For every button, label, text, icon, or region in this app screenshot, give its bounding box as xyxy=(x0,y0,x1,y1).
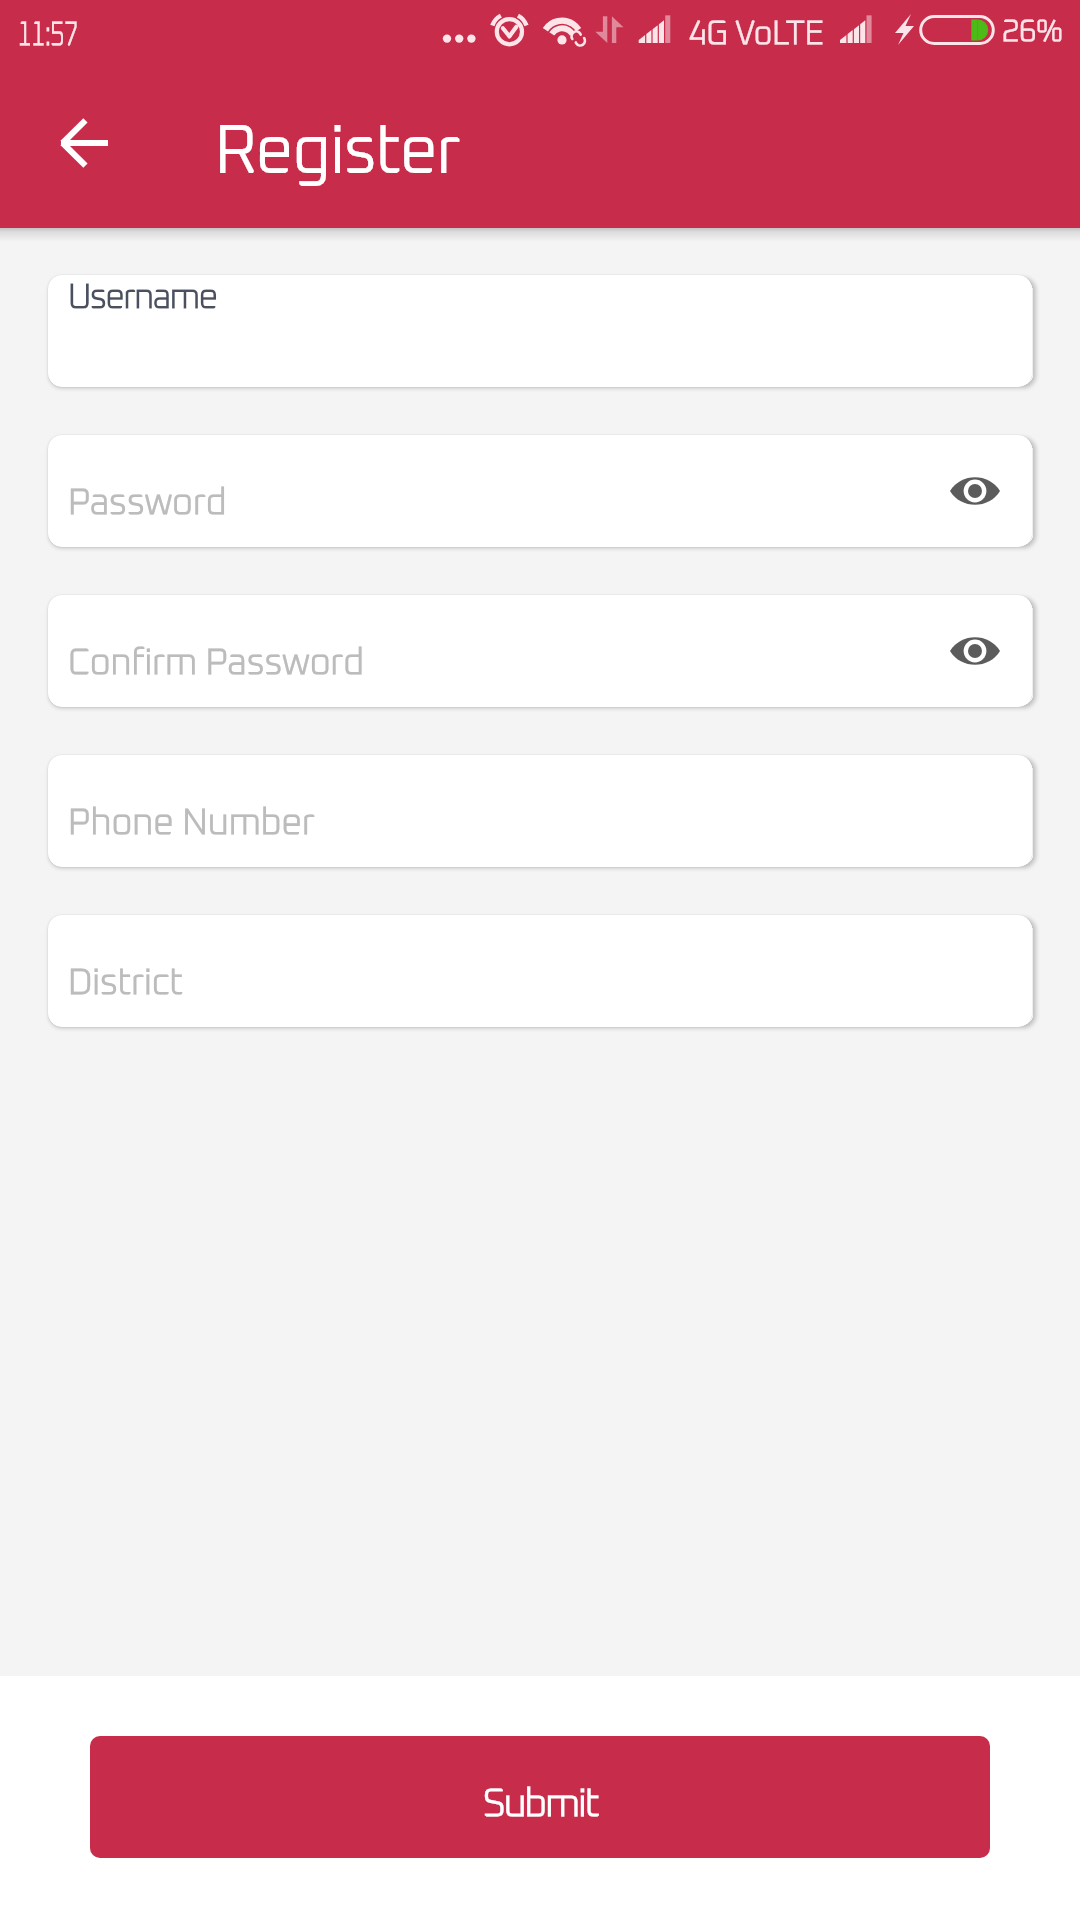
staticText: District xyxy=(68,966,184,1002)
staticText: Username xyxy=(68,281,217,315)
button[interactable]: Show password xyxy=(939,455,1011,527)
button[interactable]: Confirm Password xyxy=(48,595,1032,707)
staticText: Confirm Password xyxy=(68,646,365,682)
staticText: Password xyxy=(68,486,227,522)
button[interactable]: Password xyxy=(48,435,1032,547)
staticText: Submit xyxy=(483,1785,598,1824)
button[interactable]: District xyxy=(48,915,1032,1027)
button[interactable]: Back xyxy=(48,107,120,179)
button[interactable]: Show password xyxy=(939,615,1011,687)
staticText: Register xyxy=(215,121,460,186)
staticText: 26% xyxy=(1002,17,1063,47)
button[interactable]: Phone Number xyxy=(48,755,1032,867)
staticText: 11:57 xyxy=(18,20,78,52)
staticText: 4G VoLTE xyxy=(688,19,824,51)
button[interactable]: Submit xyxy=(90,1736,990,1858)
staticText: Phone Number xyxy=(68,806,315,842)
button[interactable]: Username xyxy=(48,275,1032,387)
